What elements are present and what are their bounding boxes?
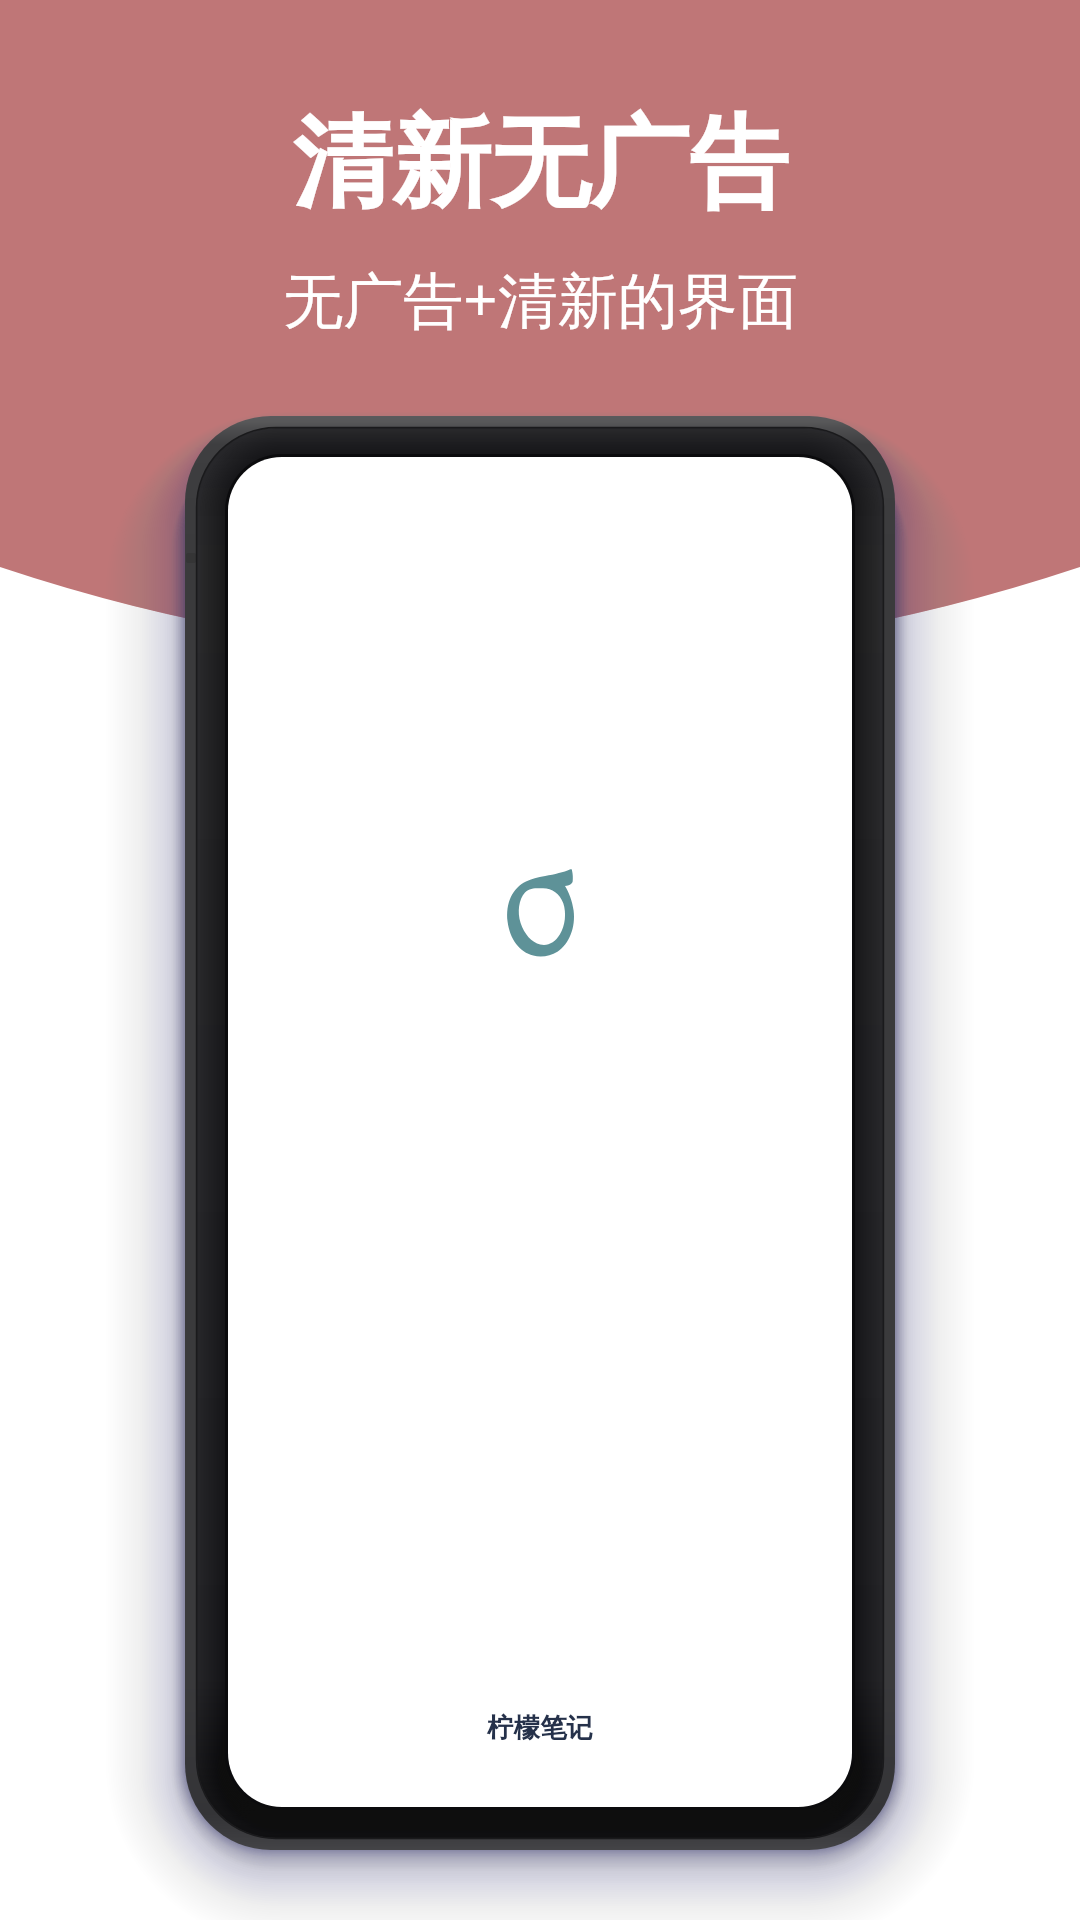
- staticText: 清新无广告: [293, 102, 788, 227]
- staticText: 无广告+清新的界面: [283, 258, 798, 340]
- button[interactable]: 清新无广告: [293, 102, 788, 227]
- staticText: 柠檬笔记: [487, 1711, 593, 1744]
- button[interactable]: 柠檬笔记 启动页: [228, 457, 852, 1807]
- button[interactable]: 无广告+清新的界面: [283, 258, 798, 340]
